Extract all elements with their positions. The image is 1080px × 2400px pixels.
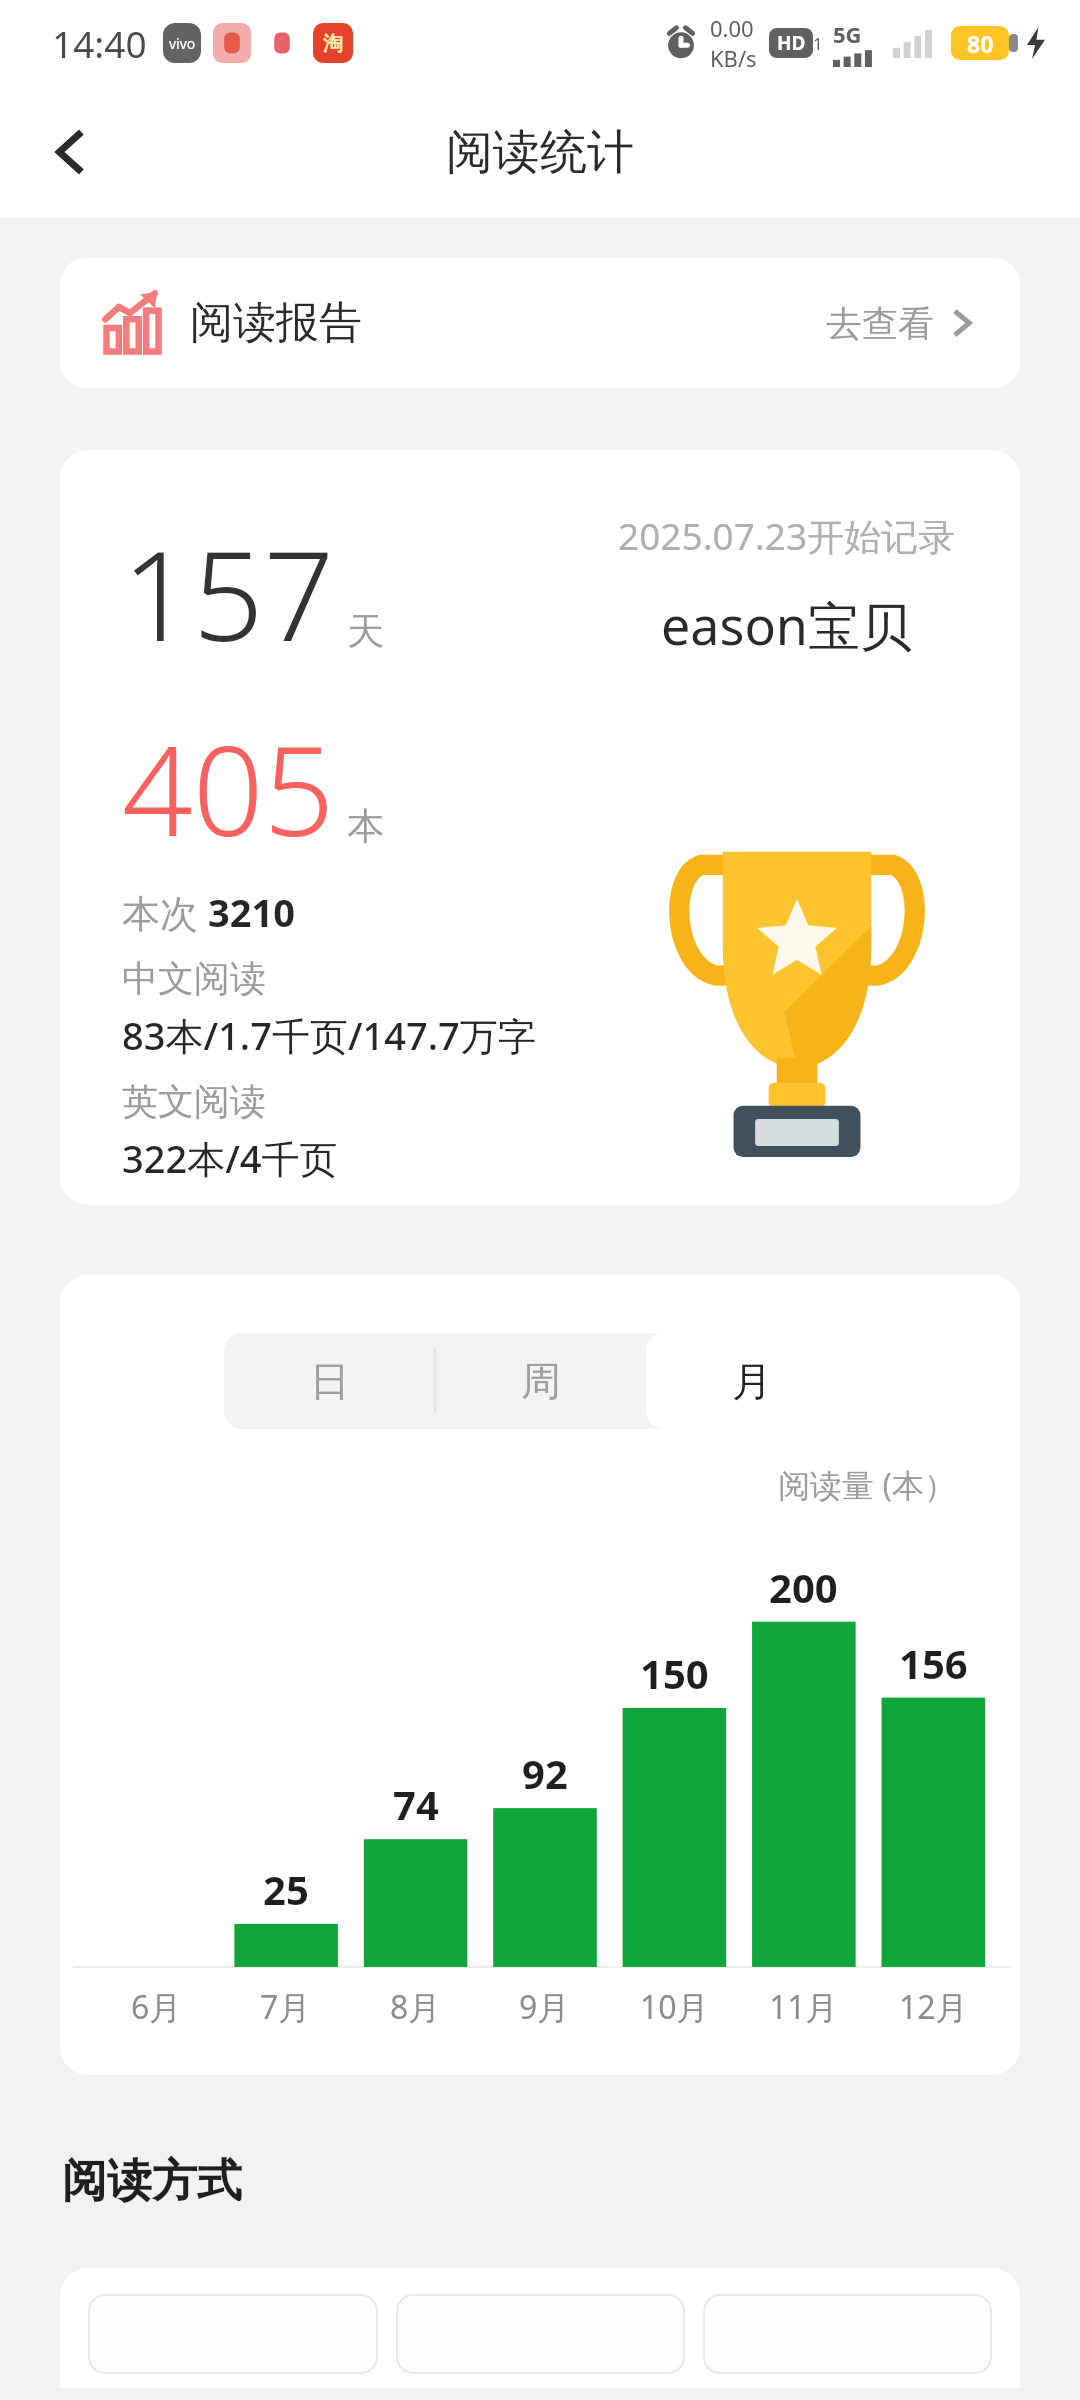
staticText: 157 xyxy=(122,508,335,677)
staticText: 25 xyxy=(263,1862,309,1916)
staticText: 12月 xyxy=(899,1985,968,2029)
staticText: 去查看 xyxy=(826,301,934,346)
staticText: 阅读报告 xyxy=(190,296,362,350)
staticText: 月 xyxy=(732,1356,772,1406)
staticText: 14:40 xyxy=(52,18,147,68)
staticText: 本次 xyxy=(122,886,208,938)
staticText: 11月 xyxy=(769,1985,838,2029)
staticText: 150 xyxy=(640,1646,709,1700)
staticText: 阅读方式 xyxy=(62,2153,242,2210)
staticText: 6月 xyxy=(131,1985,182,2029)
staticText: 8月 xyxy=(390,1985,441,2029)
button[interactable] xyxy=(88,2294,378,2374)
staticText: 3210 xyxy=(208,886,295,938)
button[interactable]: 月 xyxy=(646,1333,857,1429)
staticText: 80 xyxy=(967,28,994,59)
staticText: 156 xyxy=(899,1636,968,1690)
staticText: 0.00 xyxy=(710,13,754,43)
staticText: 英文阅读 xyxy=(122,1079,266,1124)
staticText: 92 xyxy=(522,1746,568,1800)
staticText: 83本/1.7千页/147.7万字 xyxy=(122,1009,536,1061)
staticText: 本 xyxy=(347,803,384,850)
staticText: 74 xyxy=(393,1777,439,1831)
button[interactable] xyxy=(703,2294,992,2374)
button[interactable]: 阅读报告 xyxy=(60,258,1020,388)
staticText: KB/s xyxy=(710,43,757,73)
staticText: 9月 xyxy=(519,1985,570,2029)
button[interactable] xyxy=(396,2294,685,2374)
staticText: HD xyxy=(777,30,806,56)
button[interactable]: 日 xyxy=(224,1333,435,1429)
staticText: eason宝贝 xyxy=(661,589,913,660)
staticText: 7月 xyxy=(260,1985,311,2029)
staticText: 405 xyxy=(122,703,335,872)
staticText: 周 xyxy=(521,1356,561,1406)
staticText: 200 xyxy=(769,1560,838,1614)
staticText: 日 xyxy=(310,1356,350,1406)
staticText: 阅读量 (本） xyxy=(60,1463,956,1507)
staticText: 阅读统计 xyxy=(446,123,634,182)
staticText: 天 xyxy=(347,608,384,655)
staticText: vivo xyxy=(169,34,196,53)
staticText: 5G xyxy=(833,19,862,49)
staticText: 1 xyxy=(813,32,823,55)
staticText: 中文阅读 xyxy=(122,956,266,1001)
button[interactable]: 周 xyxy=(435,1333,646,1429)
staticText: 322本/4千页 xyxy=(122,1132,338,1184)
staticText: 淘 xyxy=(323,31,343,56)
staticText: 10月 xyxy=(640,1985,709,2029)
button[interactable]: Back xyxy=(20,102,120,202)
staticText: 2025.07.23开始记录 xyxy=(618,510,956,561)
